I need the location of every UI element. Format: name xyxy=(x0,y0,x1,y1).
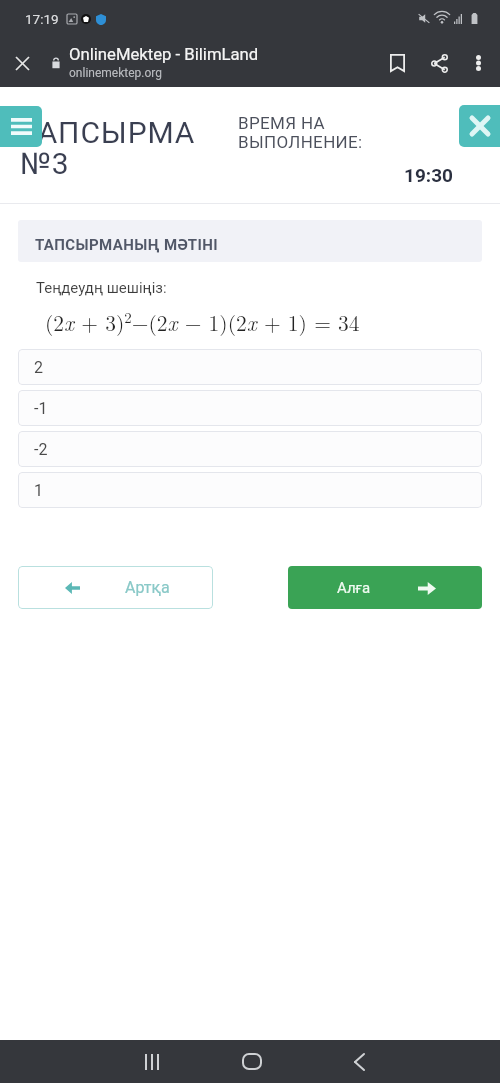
staticText: (2x + 3)2−(2x − 1)(2x + 1) = 34 xyxy=(45,306,360,337)
staticText: ТАПСЫРМА №3 xyxy=(20,115,225,182)
staticText: 1 xyxy=(34,481,43,500)
staticText: ВРЕМЯ НА ВЫПОЛНЕНИЕ: xyxy=(238,113,370,152)
staticText: Артқа xyxy=(125,578,170,597)
button[interactable]: Menu xyxy=(0,106,42,147)
staticText: -2 xyxy=(34,440,48,459)
staticText: OnlineMektep - BilimLand xyxy=(69,45,259,65)
button[interactable]: Bookmark xyxy=(376,42,418,84)
button[interactable]: Home xyxy=(228,1040,276,1083)
staticText: onlinemektep.org xyxy=(69,66,162,80)
button[interactable]: Back xyxy=(335,1040,383,1083)
button[interactable]: Share xyxy=(418,42,460,84)
staticText: Алға xyxy=(337,579,371,597)
button[interactable]: More options xyxy=(460,45,496,81)
button[interactable]: Recent apps xyxy=(128,1040,176,1083)
button[interactable]: Алға xyxy=(288,566,482,609)
button[interactable]: Артқа xyxy=(18,566,213,609)
button[interactable]: -2 xyxy=(18,431,482,467)
staticText: -1 xyxy=(34,399,48,418)
button[interactable]: 2 xyxy=(18,349,482,385)
button[interactable]: Close task xyxy=(459,105,500,147)
staticText: Теңдеудң шешіңіз: xyxy=(36,279,167,297)
staticText: 2 xyxy=(34,358,43,377)
staticText: 17:19 xyxy=(25,11,59,27)
button[interactable]: -1 xyxy=(18,390,482,426)
staticText: ТАПСЫРМАНЫҢ МӘТІНІ xyxy=(35,236,218,254)
button[interactable]: 1 xyxy=(18,472,482,508)
button[interactable]: Close xyxy=(0,41,44,85)
staticText: 19:30 xyxy=(238,164,453,186)
